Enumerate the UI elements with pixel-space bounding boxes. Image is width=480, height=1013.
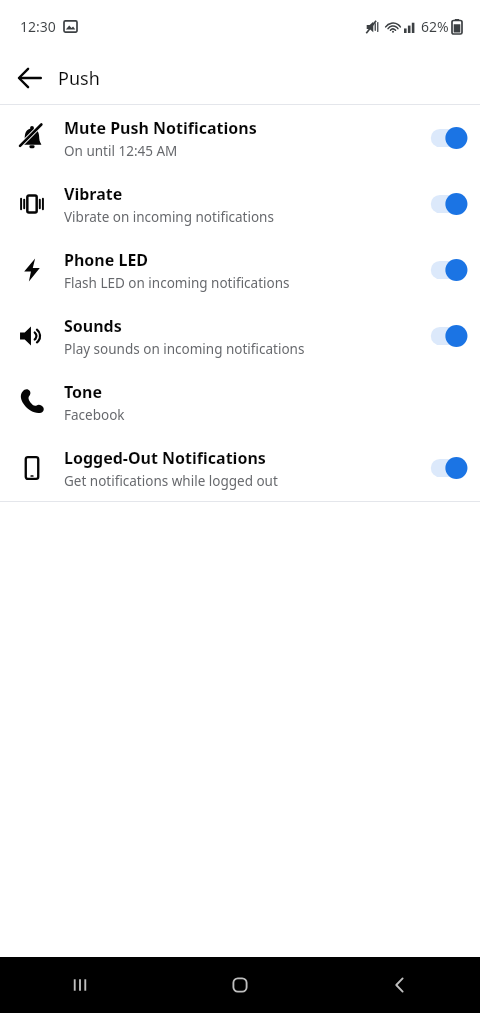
button[interactable]: Recent apps bbox=[0, 957, 160, 1013]
staticText: Logged-Out Notifications bbox=[64, 447, 266, 469]
button[interactable]: Tone bbox=[0, 369, 480, 435]
staticText: Play sounds on incoming notifications bbox=[64, 340, 305, 358]
staticText: Sounds bbox=[64, 315, 122, 337]
button[interactable]: Toggle on bbox=[430, 456, 470, 480]
staticText: Mute Push Notifications bbox=[64, 117, 257, 139]
button[interactable]: Back bbox=[8, 56, 52, 100]
button[interactable]: Toggle on bbox=[430, 324, 470, 348]
staticText: Tone bbox=[64, 381, 103, 403]
button[interactable]: Logged-Out Notifications bbox=[0, 435, 480, 501]
staticText: Push bbox=[58, 66, 100, 91]
button[interactable]: Toggle on bbox=[430, 192, 470, 216]
staticText: Get notifications while logged out bbox=[64, 472, 278, 490]
button[interactable]: Home bbox=[160, 957, 320, 1013]
button[interactable]: Phone LED bbox=[0, 237, 480, 303]
staticText: 12:30 bbox=[20, 17, 56, 36]
staticText: Flash LED on incoming notifications bbox=[64, 274, 290, 292]
button[interactable]: Back bbox=[320, 957, 480, 1013]
button[interactable]: Sounds bbox=[0, 303, 480, 369]
staticText: Vibrate bbox=[64, 183, 123, 205]
button[interactable]: Vibrate bbox=[0, 171, 480, 237]
staticText: Vibrate on incoming notifications bbox=[64, 208, 274, 226]
button[interactable]: Toggle on bbox=[430, 258, 470, 282]
staticText: On until 12:45 AM bbox=[64, 142, 178, 160]
staticText: Phone LED bbox=[64, 249, 149, 271]
button[interactable]: Mute Push Notifications bbox=[0, 105, 480, 171]
staticText: 62% bbox=[421, 17, 449, 36]
button[interactable]: Toggle on bbox=[430, 126, 470, 150]
staticText: Facebook bbox=[64, 406, 125, 424]
